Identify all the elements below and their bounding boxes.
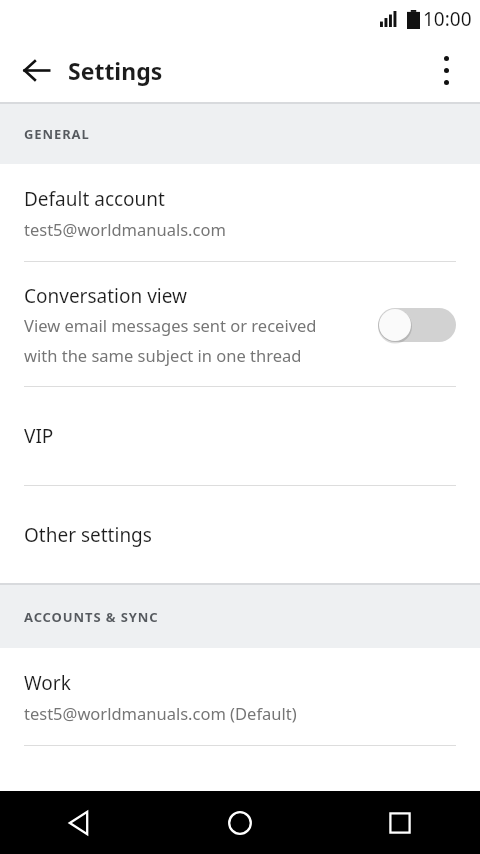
button[interactable]: Work — [0, 648, 480, 745]
button[interactable]: Conversation view toggle — [378, 308, 456, 342]
staticText: Settings — [68, 55, 163, 86]
staticText: Default account — [24, 186, 165, 212]
button[interactable]: Default account — [0, 164, 480, 261]
button[interactable]: VIP — [0, 387, 480, 485]
button[interactable]: Back — [0, 791, 160, 854]
button[interactable]: Recent apps — [320, 791, 480, 854]
staticText: Work — [24, 670, 71, 696]
button[interactable]: Home — [160, 791, 320, 854]
button[interactable]: Other settings — [0, 486, 480, 583]
staticText: Conversation view — [24, 283, 187, 309]
staticText: ACCOUNTS & SYNC — [24, 608, 159, 626]
staticText: VIP — [24, 423, 54, 449]
staticText: 10:00 — [423, 6, 472, 32]
staticText: GENERAL — [24, 125, 90, 143]
button[interactable]: Conversation view — [0, 262, 480, 386]
button[interactable]: More options — [420, 44, 472, 96]
staticText: View email messages sent or received wit… — [24, 314, 318, 366]
staticText: test5@worldmanuals.com (Default) — [24, 702, 297, 724]
button[interactable]: Back — [10, 44, 62, 96]
staticText: Other settings — [24, 522, 152, 548]
staticText: test5@worldmanuals.com — [24, 218, 226, 240]
